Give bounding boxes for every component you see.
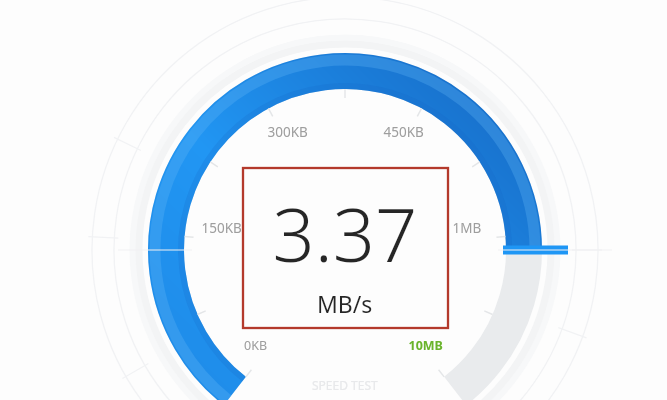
button[interactable]: Speed test gauge showing 3.37 MB/s [0, 0, 667, 400]
